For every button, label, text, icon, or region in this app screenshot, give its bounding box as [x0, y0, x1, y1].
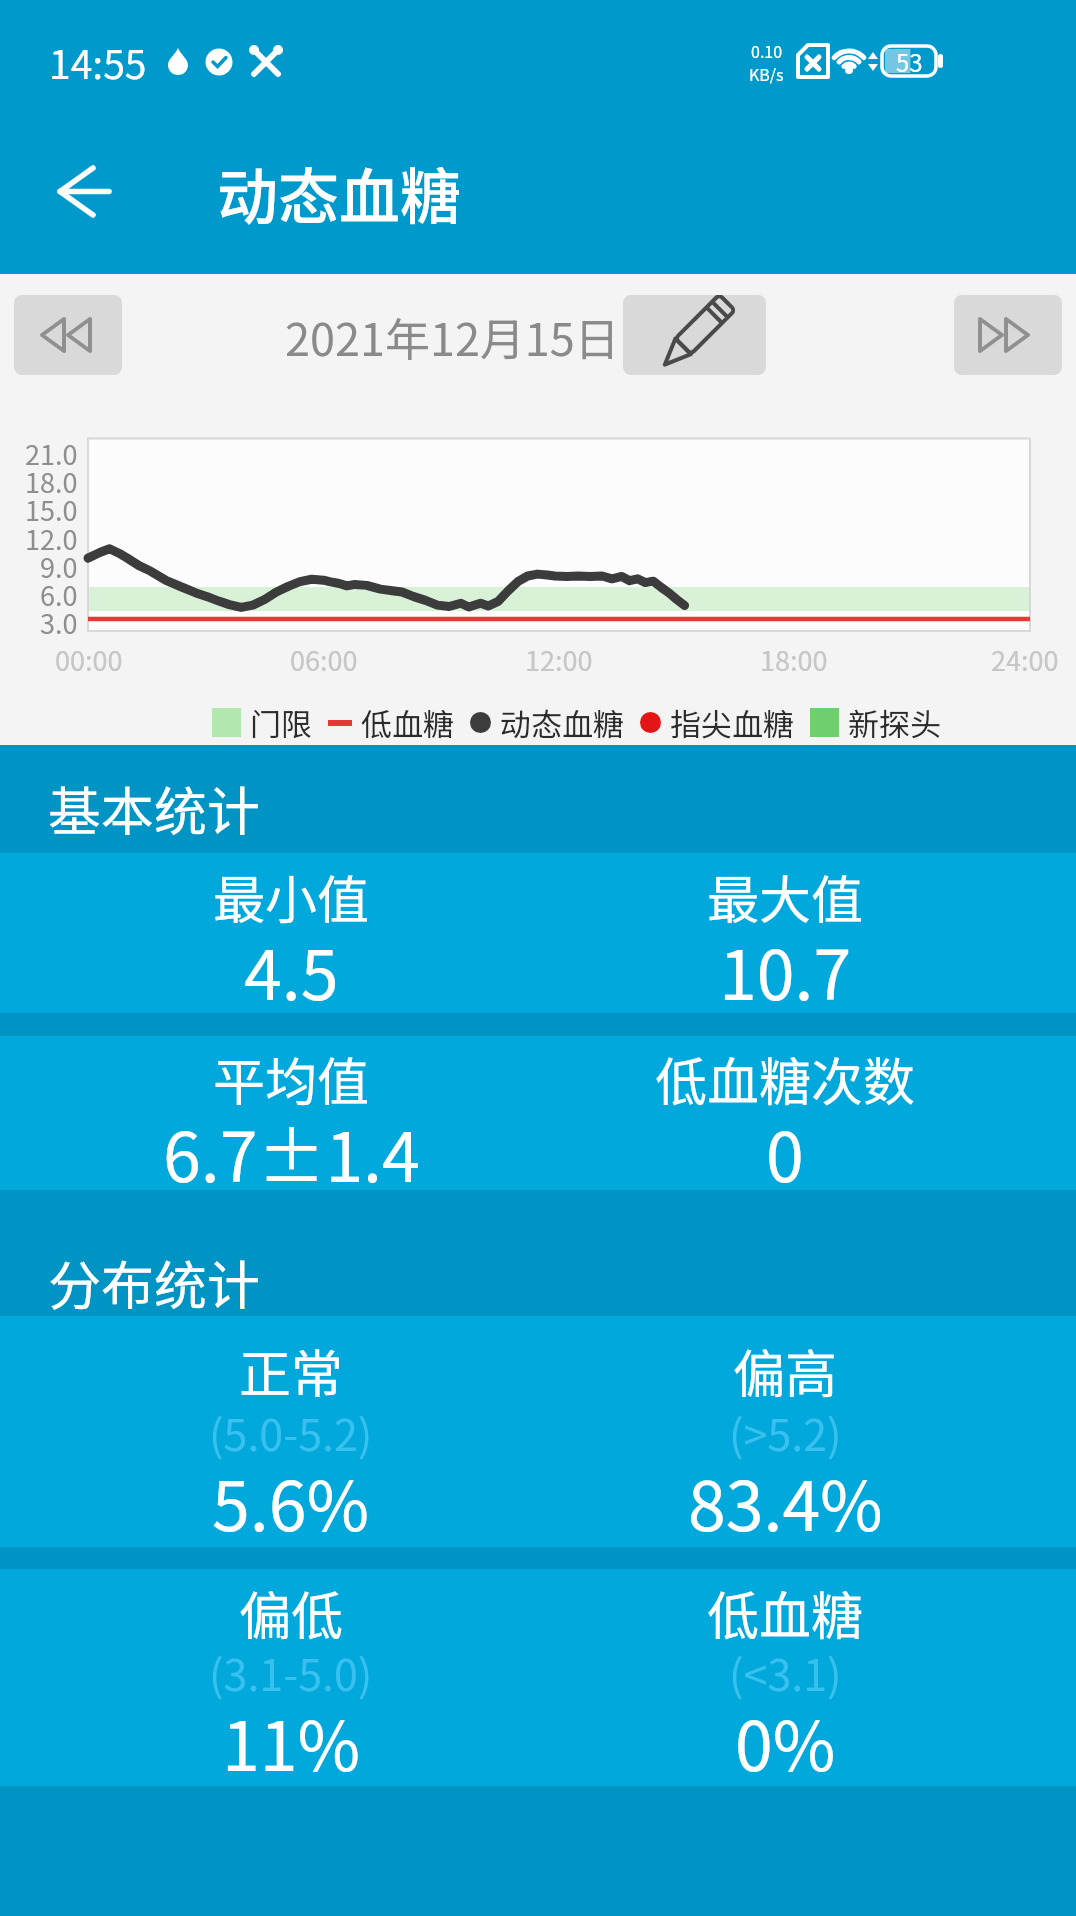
staticText: 18.0 — [25, 462, 78, 501]
staticText: 0 — [766, 1103, 804, 1201]
staticText: 0% — [735, 1692, 836, 1790]
staticText: 低血糖 — [707, 1575, 864, 1650]
staticText: 偏高 — [733, 1333, 838, 1408]
button[interactable] — [623, 295, 766, 375]
staticText: (3.1-5.0) — [209, 1641, 373, 1703]
staticText: (<3.1) — [729, 1641, 842, 1703]
staticText: 15.0 — [25, 490, 78, 529]
staticText: 24:00 — [991, 640, 1059, 679]
staticText: 53 — [896, 44, 923, 79]
staticText: 偏低 — [239, 1575, 344, 1650]
staticText: 低血糖次数 — [655, 1041, 916, 1116]
staticText: 83.4% — [688, 1452, 883, 1550]
staticText: KB/s — [749, 62, 784, 85]
button[interactable] — [954, 295, 1062, 375]
staticText: 0.10 — [751, 39, 783, 62]
staticText: 12.0 — [25, 519, 78, 558]
staticText: 基本统计 — [48, 770, 260, 847]
staticText: 10.7 — [719, 921, 852, 1019]
staticText: 动态血糖 — [500, 700, 624, 745]
staticText: (>5.2) — [729, 1401, 842, 1463]
staticText: 动态血糖 — [217, 148, 462, 236]
staticText: 18:00 — [760, 640, 828, 679]
staticText: 6.0 — [40, 575, 78, 614]
staticText: 5.6% — [212, 1452, 370, 1550]
button[interactable] — [36, 144, 132, 240]
staticText: 2021年12月15日 — [285, 304, 620, 369]
staticText: 06:00 — [290, 640, 358, 679]
staticText: 平均值 — [213, 1041, 370, 1116]
staticText: (5.0-5.2) — [209, 1401, 373, 1463]
staticText: 4.5 — [244, 921, 339, 1019]
staticText: 低血糖 — [361, 700, 454, 745]
staticText: 11% — [222, 1692, 361, 1790]
staticText: 正常 — [239, 1333, 344, 1408]
staticText: 分布统计 — [48, 1244, 260, 1321]
staticText: 6.7±1.4 — [163, 1103, 420, 1201]
staticText: 12:00 — [525, 640, 593, 679]
staticText: 指尖血糖 — [670, 700, 794, 745]
staticText: 14:55 — [49, 34, 147, 90]
staticText: 门限 — [250, 700, 312, 745]
staticText: 最小值 — [213, 859, 370, 934]
staticText: 新探头 — [848, 700, 941, 745]
button[interactable] — [14, 295, 122, 375]
staticText: 3.0 — [40, 603, 78, 642]
staticText: 最大值 — [707, 859, 864, 934]
staticText: 00:00 — [55, 640, 123, 679]
staticText: 21.0 — [25, 434, 78, 473]
staticText: 9.0 — [40, 547, 78, 586]
